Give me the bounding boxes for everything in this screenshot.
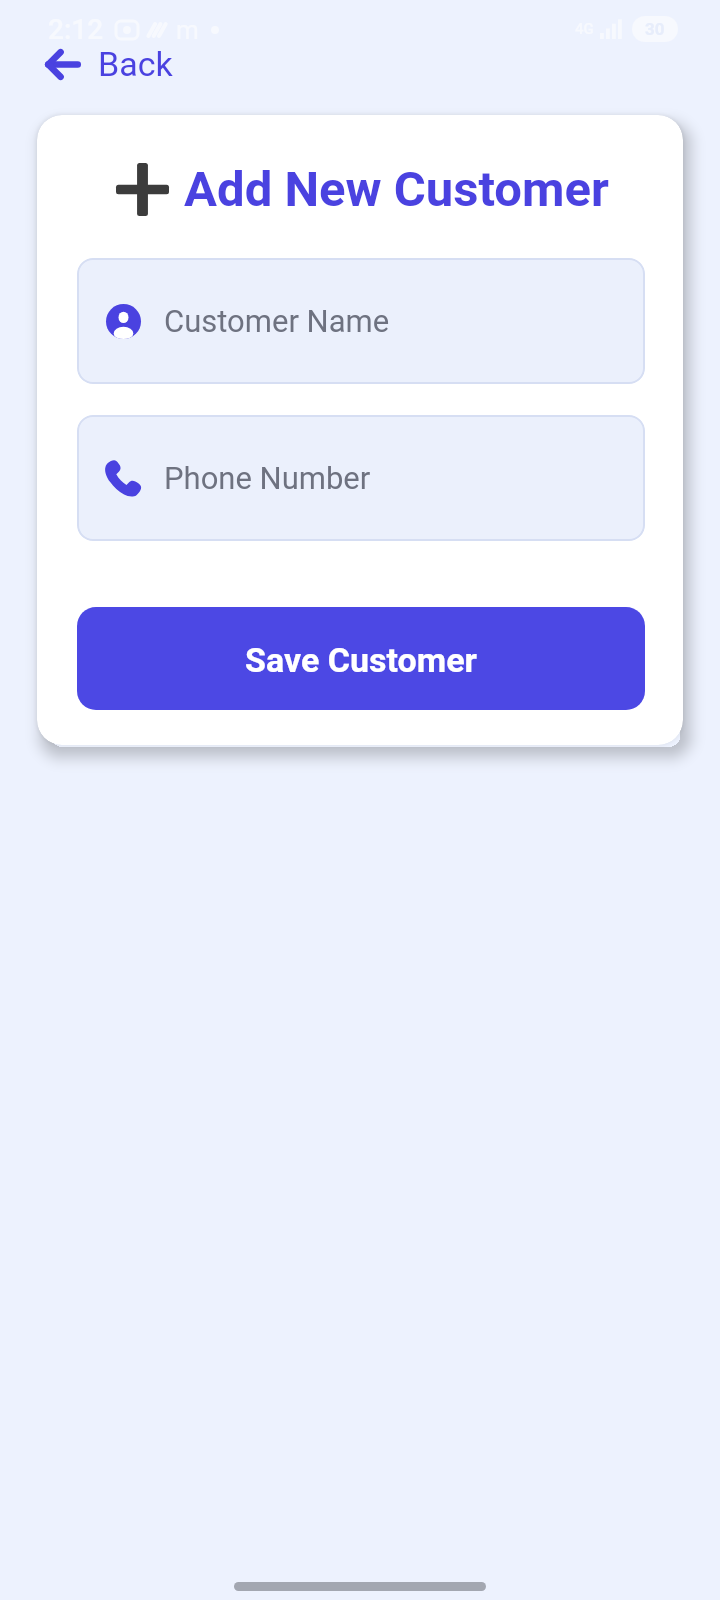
button[interactable]: Customer Name [77, 258, 645, 384]
staticText: Back [98, 44, 173, 84]
staticText: 30 [645, 19, 665, 39]
button[interactable]: Add New Customer [116, 161, 609, 218]
button[interactable]: Back [45, 44, 173, 84]
other: Back [45, 48, 81, 81]
staticText: Customer Name [164, 303, 390, 339]
staticText: Phone Number [164, 460, 371, 496]
staticText: Save Customer [245, 640, 477, 680]
staticText: m [176, 15, 199, 45]
staticText: 4G [575, 20, 594, 38]
staticText: 2:12 [48, 13, 104, 46]
button[interactable]: Save Customer [77, 607, 645, 710]
staticText: Add New Customer [184, 161, 609, 218]
button[interactable]: Phone Number [77, 415, 645, 541]
